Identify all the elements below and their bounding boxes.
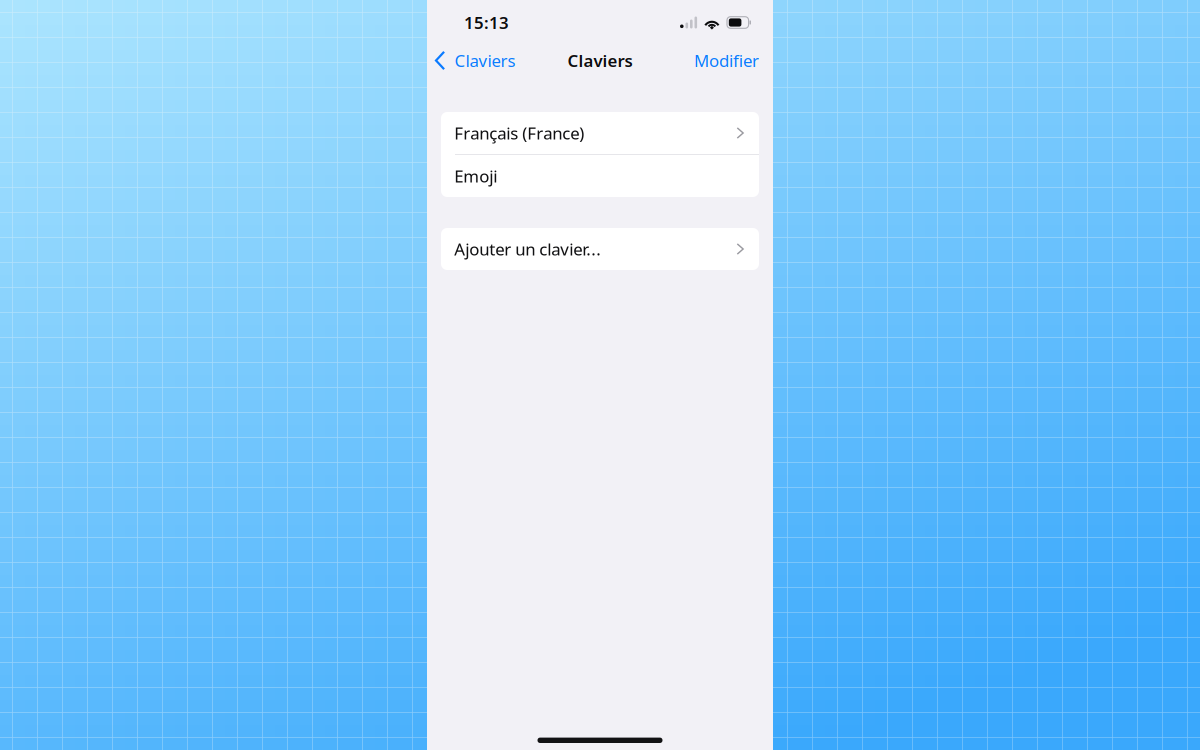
button[interactable]: Français (France) — [441, 112, 759, 154]
button[interactable]: Ajouter un clavier... — [441, 228, 759, 270]
button[interactable]: Modifier — [694, 45, 773, 76]
staticText: Claviers — [567, 49, 632, 72]
staticText: Français (France) — [454, 122, 584, 144]
staticText: Claviers — [454, 49, 515, 72]
staticText: 15:13 — [464, 11, 509, 34]
staticText: Emoji — [454, 165, 497, 187]
staticText: Ajouter un clavier... — [454, 238, 601, 260]
staticText: Modifier — [694, 49, 759, 72]
button[interactable]: Claviers — [427, 45, 515, 76]
button[interactable]: Emoji — [441, 155, 759, 197]
